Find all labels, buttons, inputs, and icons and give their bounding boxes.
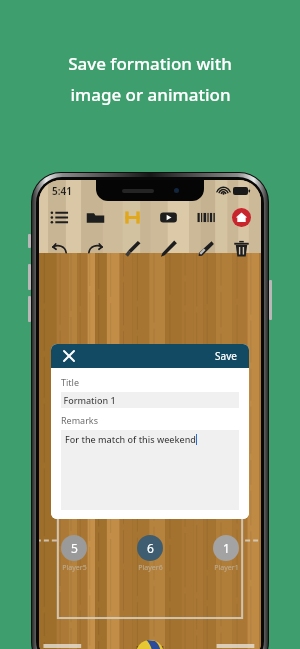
staticText: Remarks <box>61 414 98 426</box>
staticText: Save <box>215 349 237 363</box>
button[interactable]: 1 <box>213 535 239 561</box>
staticText: image or animation <box>70 83 231 106</box>
button[interactable]: Play video <box>154 203 182 231</box>
button[interactable]: 6 <box>137 535 163 561</box>
staticText: For the match of this weekend <box>65 433 196 445</box>
staticText: Player1 <box>214 563 239 573</box>
button[interactable]: Delete <box>227 234 255 262</box>
button[interactable]: Undo <box>45 234 73 262</box>
staticText: 1 <box>223 540 230 556</box>
button[interactable]: Pencil <box>154 234 182 262</box>
staticText: 6 <box>147 540 154 556</box>
button[interactable]: Eraser <box>191 234 219 262</box>
staticText: Title <box>61 376 79 388</box>
button[interactable]: Redo <box>81 234 109 262</box>
staticText: Save formation with <box>68 52 232 75</box>
button[interactable]: 5 <box>61 535 87 561</box>
button[interactable]: Barcode <box>191 203 219 231</box>
staticText: Formation 1 <box>63 394 116 406</box>
button[interactable]: Folder <box>81 203 109 231</box>
button[interactable]: Close <box>61 348 77 364</box>
button[interactable]: Formation 1 <box>61 392 239 408</box>
button[interactable]: Save <box>213 347 239 365</box>
staticText: Player5 <box>62 563 87 573</box>
button[interactable]: Home <box>227 203 255 231</box>
staticText: Player6 <box>138 563 163 573</box>
button[interactable]: Save <box>118 203 146 231</box>
staticText: 5 <box>71 540 78 556</box>
staticText: 5:41 <box>52 184 72 198</box>
button[interactable]: List menu <box>45 203 73 231</box>
button[interactable]: Brush <box>118 234 146 262</box>
button[interactable]: For the match of this weekend <box>61 430 239 510</box>
